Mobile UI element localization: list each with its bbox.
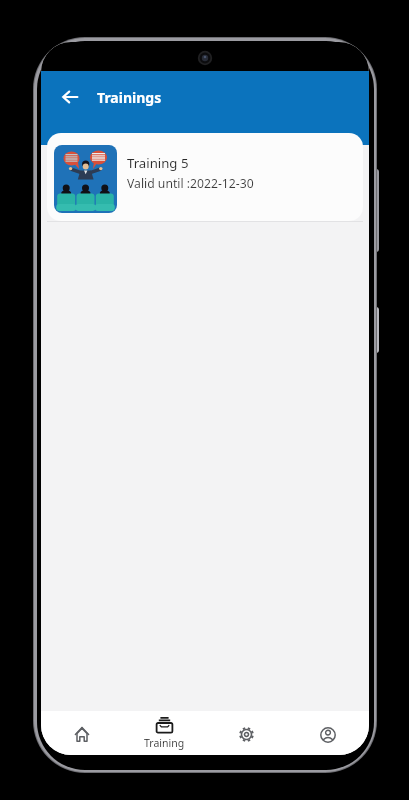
button[interactable]: [52, 81, 88, 113]
staticText: Training: [144, 736, 185, 750]
staticText: Valid until :2022-12-30: [127, 175, 254, 192]
button[interactable]: [287, 711, 369, 755]
staticText: Training 5: [127, 154, 189, 172]
button[interactable]: [41, 711, 123, 755]
button[interactable]: [205, 711, 287, 755]
button[interactable]: Training 5: [47, 133, 363, 221]
staticText: Trainings: [97, 88, 162, 107]
button[interactable]: Training: [123, 711, 205, 755]
